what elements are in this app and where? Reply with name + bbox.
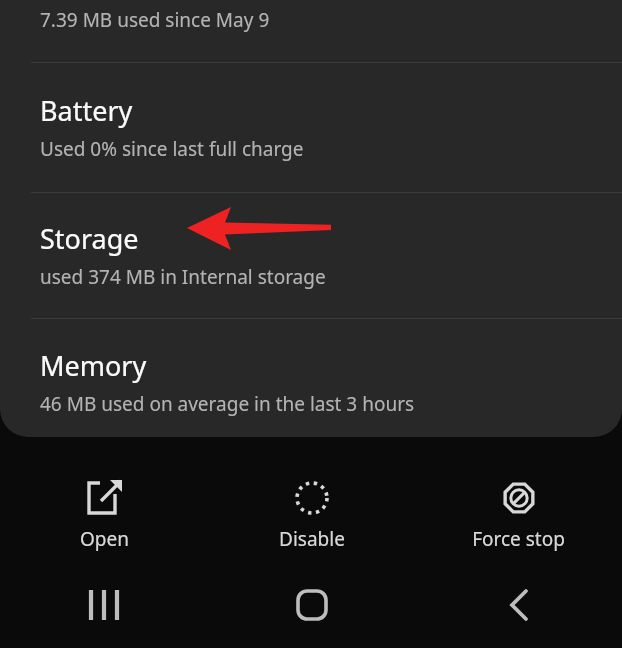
button[interactable]: Force stop: [415, 460, 622, 560]
button[interactable]: Disable: [208, 460, 415, 560]
staticText: Storage: [40, 220, 139, 257]
button[interactable]: Back: [415, 570, 622, 640]
staticText: Force stop: [472, 526, 565, 552]
button[interactable]: Storage: [0, 220, 622, 304]
button[interactable]: Recents: [0, 570, 208, 640]
button[interactable]: Open: [0, 460, 208, 560]
button[interactable]: Home: [208, 570, 415, 640]
staticText: Memory: [40, 347, 147, 384]
button[interactable]: Memory: [0, 347, 622, 431]
staticText: Battery: [40, 92, 133, 129]
staticText: Open: [80, 526, 129, 552]
staticText: used 374 MB in Internal storage: [40, 264, 326, 290]
staticText: 46 MB used on average in the last 3 hour…: [40, 391, 415, 417]
staticText: Disable: [279, 526, 345, 552]
staticText: 7.39 MB used since May 9: [40, 7, 270, 33]
button[interactable]: Battery: [0, 92, 622, 176]
staticText: Used 0% since last full charge: [40, 136, 304, 162]
